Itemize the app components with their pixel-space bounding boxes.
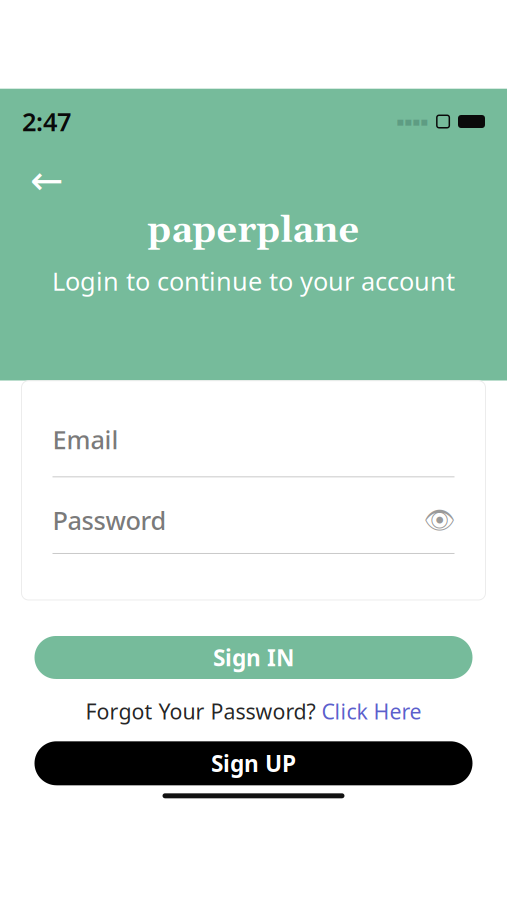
- staticText: Login to continue to your account: [52, 264, 455, 298]
- staticText: Sign IN: [213, 642, 294, 672]
- staticText: Forgot Your Password?: [85, 697, 321, 725]
- button[interactable]: Click Here: [321, 697, 421, 725]
- staticText: 👁: [423, 506, 455, 535]
- staticText: ▪▪▪▪: [396, 115, 428, 128]
- staticText: Click Here: [321, 697, 421, 725]
- button[interactable]: Show password: [424, 507, 454, 533]
- staticText: Email: [52, 423, 118, 456]
- staticText: 2:47: [22, 105, 71, 138]
- staticText: Sign UP: [211, 748, 296, 778]
- button[interactable]: Sign IN: [34, 636, 472, 679]
- staticText: paperplane: [147, 208, 359, 254]
- staticText: Password: [52, 503, 166, 537]
- button[interactable]: Back: [24, 160, 70, 200]
- button[interactable]: Sign UP: [34, 741, 472, 785]
- staticText: ←: [30, 158, 64, 203]
